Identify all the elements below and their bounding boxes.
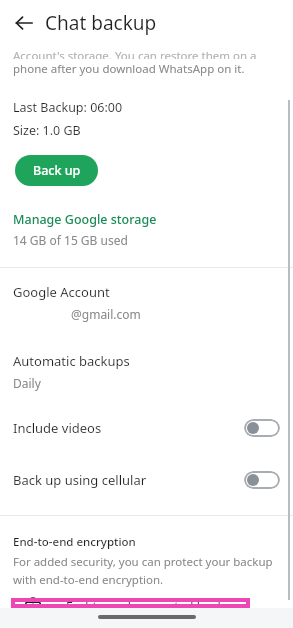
button[interactable]: Back up using cellular: [0, 467, 293, 493]
staticText: Automatic backups: [13, 352, 130, 370]
staticText: Daily: [13, 375, 41, 391]
other: Toggle: [244, 419, 280, 437]
staticText: Google Account: [13, 283, 110, 301]
staticText: Chat backup: [45, 10, 157, 36]
staticText: Last Backup: 06:00: [13, 99, 123, 116]
staticText: End-to-end encrypted backup: [66, 598, 240, 608]
staticText: 14 GB of 15 GB used: [13, 232, 128, 248]
staticText: Account's storage. You can restore them …: [13, 48, 280, 59]
button[interactable]: Back up: [15, 155, 98, 186]
button[interactable]: Automatic backups: [0, 350, 293, 399]
staticText: with end-to-end encryption.: [13, 572, 164, 588]
staticText: Manage Google storage: [13, 211, 157, 228]
staticText: Include videos: [13, 419, 244, 437]
staticText: phone after you download WhatsApp on it.: [13, 61, 245, 77]
button[interactable]: Google Account: [0, 268, 293, 336]
staticText: For added security, you can protect your…: [13, 554, 273, 570]
button[interactable]: End-to-end encrypted backup: [11, 598, 250, 608]
staticText: Back up using cellular: [13, 471, 244, 489]
other: Toggle: [244, 471, 280, 489]
staticText: End-to-end encryption: [13, 534, 136, 550]
staticText: Size: 1.0 GB: [13, 122, 81, 139]
button[interactable]: Manage Google storage: [0, 209, 293, 250]
staticText: Back up: [33, 162, 81, 179]
button[interactable]: Include videos: [0, 415, 293, 441]
staticText: @gmail.com: [71, 306, 141, 322]
button[interactable]: Back: [8, 7, 40, 39]
